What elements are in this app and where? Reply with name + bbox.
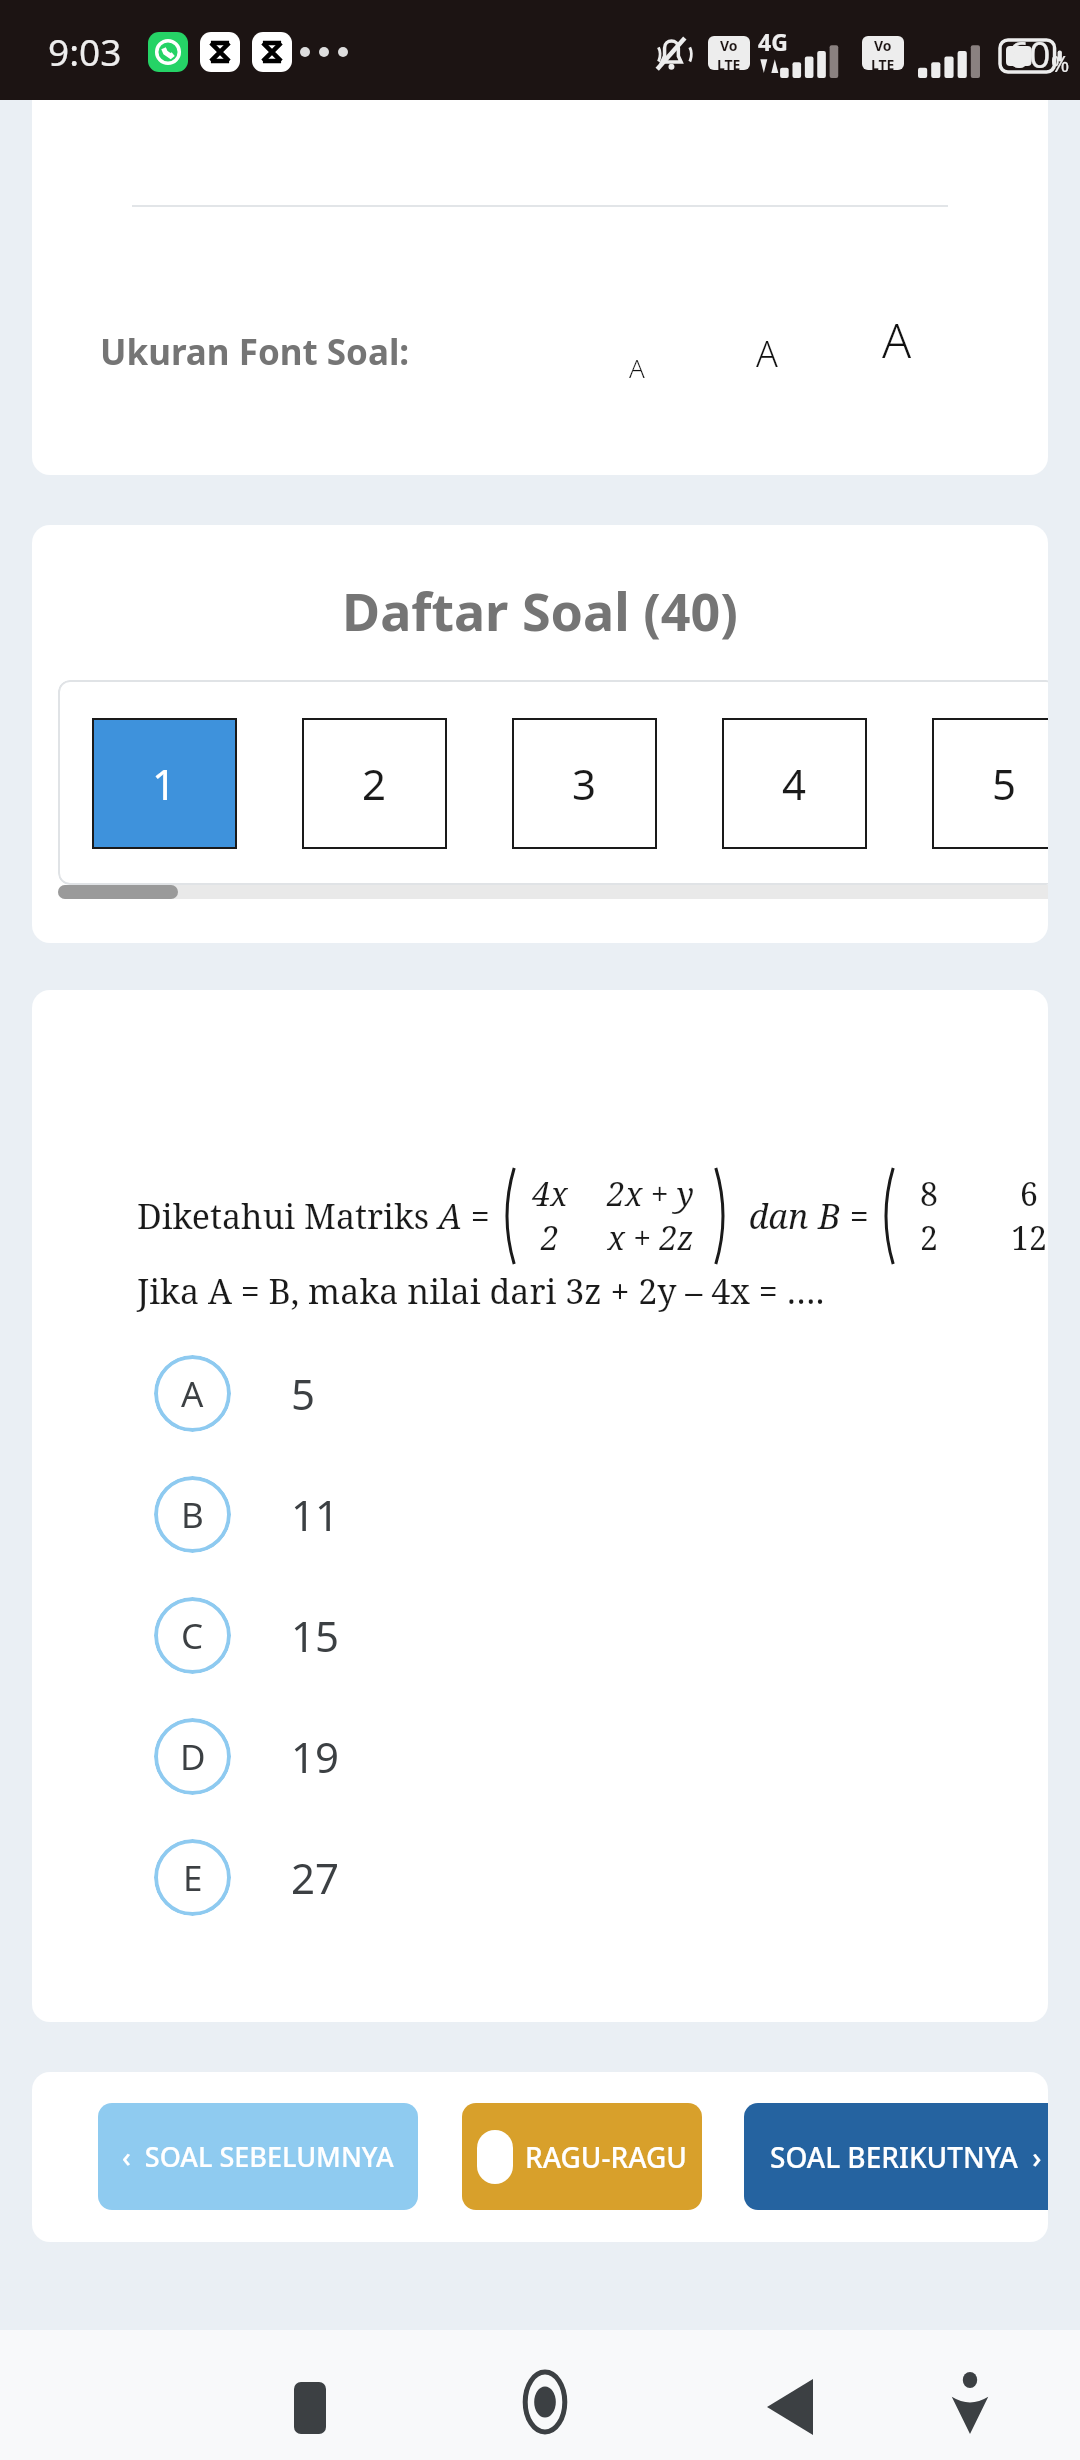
staticText: ‹ SOAL SEBELUMNYA xyxy=(122,2138,394,2175)
button[interactable]: D xyxy=(154,1706,854,1806)
staticText: A xyxy=(181,1370,204,1418)
staticText: 5 xyxy=(291,1365,316,1422)
staticText: D xyxy=(180,1733,206,1781)
staticText: 2 xyxy=(362,755,387,812)
staticText: 6 xyxy=(1020,1172,1038,1216)
button[interactable]: Small font xyxy=(602,332,672,402)
staticText: 27 xyxy=(291,1849,340,1906)
staticText: dan xyxy=(731,1193,818,1239)
button[interactable]: Recent apps xyxy=(270,2368,350,2448)
staticText: % xyxy=(1051,48,1070,78)
staticText: B xyxy=(181,1491,204,1539)
staticText: B xyxy=(818,1193,841,1239)
button[interactable]: Medium font xyxy=(732,318,802,388)
button[interactable]: E xyxy=(154,1827,854,1927)
staticText: SOAL BERIKUTNYA › xyxy=(770,2138,1042,2176)
staticText: 12 xyxy=(1011,1216,1047,1260)
staticText: LTE xyxy=(717,55,741,70)
button[interactable]: Hide keyboard xyxy=(930,2363,1010,2443)
staticText: A xyxy=(438,1193,462,1239)
staticText: = xyxy=(841,1193,878,1239)
button[interactable]: SOAL BERIKUTNYA › xyxy=(744,2103,1048,2210)
staticText: 1 xyxy=(152,755,177,812)
staticText: 4 xyxy=(782,755,807,812)
staticText: 19 xyxy=(291,1728,340,1785)
button[interactable]: A xyxy=(154,1343,854,1443)
staticText: C xyxy=(181,1612,204,1660)
staticText: Daftar Soal (40) xyxy=(32,575,1048,646)
staticText: E xyxy=(183,1854,203,1902)
staticText: 60 xyxy=(1008,28,1051,78)
button[interactable]: 4 xyxy=(722,718,867,849)
button[interactable]: ‹ SOAL SEBELUMNYA xyxy=(98,2103,418,2210)
staticText: 2x + y xyxy=(607,1172,694,1216)
button[interactable]: Home xyxy=(505,2362,585,2442)
staticText: 8 xyxy=(920,1172,938,1216)
staticText: LTE xyxy=(871,55,895,70)
staticText: 4x xyxy=(532,1172,568,1216)
button[interactable]: 3 xyxy=(512,718,657,849)
staticText: Jika A = B, maka nilai dari 3z + 2y – 4x… xyxy=(137,1268,825,1314)
staticText: A xyxy=(882,307,912,372)
button[interactable]: 1 xyxy=(92,718,237,849)
button[interactable]: 2 xyxy=(302,718,447,849)
staticText: 11 xyxy=(291,1486,340,1543)
button[interactable]: 5 xyxy=(932,718,1048,849)
staticText: Ukuran Font Soal: xyxy=(100,328,410,376)
staticText: x + 2z xyxy=(607,1216,694,1260)
staticText: Soal No.1 xyxy=(100,42,313,105)
staticText: 3 xyxy=(572,755,597,812)
staticText: Vo xyxy=(874,36,892,55)
staticText: 5 xyxy=(992,755,1017,812)
staticText: 15 xyxy=(291,1607,340,1664)
staticText: RAGU-RAGU xyxy=(525,2138,687,2176)
staticText: = xyxy=(462,1193,499,1239)
staticText: 4G xyxy=(758,26,788,57)
button[interactable]: RAGU-RAGU xyxy=(462,2103,702,2210)
staticText: 2 xyxy=(920,1216,938,1260)
button[interactable]: B xyxy=(154,1464,854,1564)
button[interactable]: Large font xyxy=(862,304,932,374)
staticText: Diketahui Matriks xyxy=(137,1193,438,1239)
staticText: 2 xyxy=(541,1216,559,1260)
staticText: 9:03 xyxy=(48,26,122,76)
staticText: A xyxy=(629,350,645,385)
button[interactable]: Back xyxy=(750,2367,830,2447)
button[interactable]: C xyxy=(154,1585,854,1685)
staticText: A xyxy=(756,329,778,378)
staticText: Vo xyxy=(720,36,738,55)
